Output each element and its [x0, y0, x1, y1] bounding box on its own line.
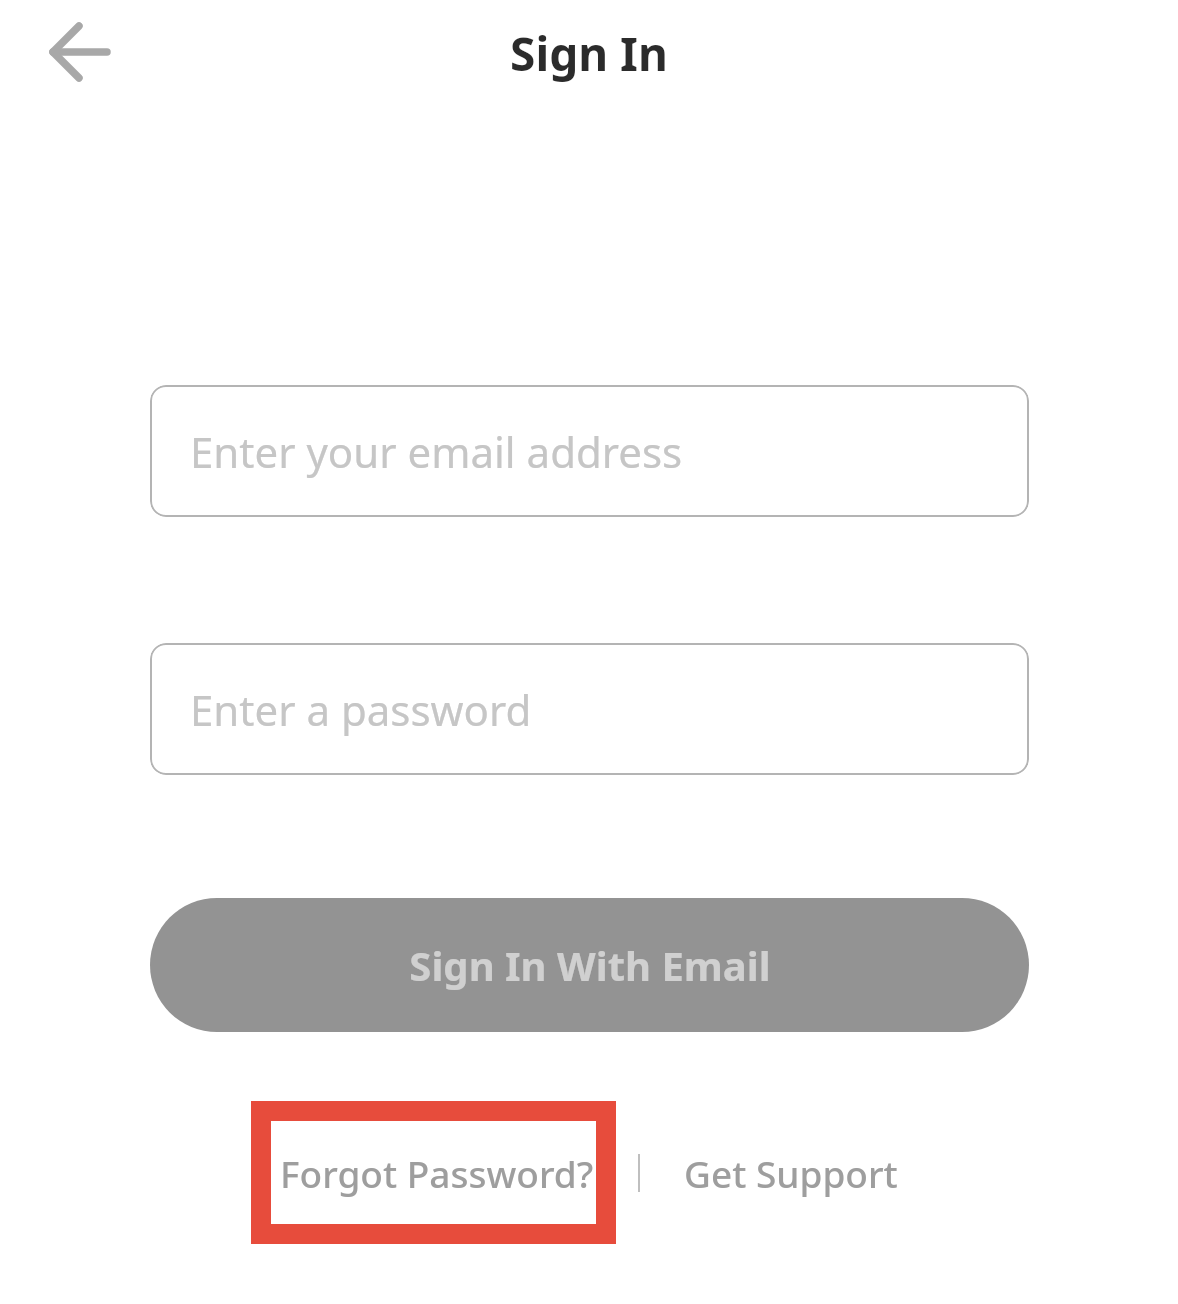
button[interactable]: Enter your email address	[150, 385, 1029, 517]
staticText: Enter your email address	[190, 423, 683, 480]
staticText: Enter a password	[190, 681, 532, 738]
staticText: Sign In With Email	[409, 938, 771, 992]
staticText: Sign In	[0, 22, 1178, 85]
staticText: Forgot Password?	[280, 1148, 594, 1198]
button[interactable]: Get Support	[676, 1138, 906, 1208]
button[interactable]: Forgot Password?	[272, 1138, 602, 1208]
staticText: Get Support	[684, 1148, 898, 1198]
button[interactable]: Sign In With Email	[150, 898, 1029, 1032]
button[interactable]: Enter a password	[150, 643, 1029, 775]
button[interactable]: Back	[40, 12, 120, 92]
